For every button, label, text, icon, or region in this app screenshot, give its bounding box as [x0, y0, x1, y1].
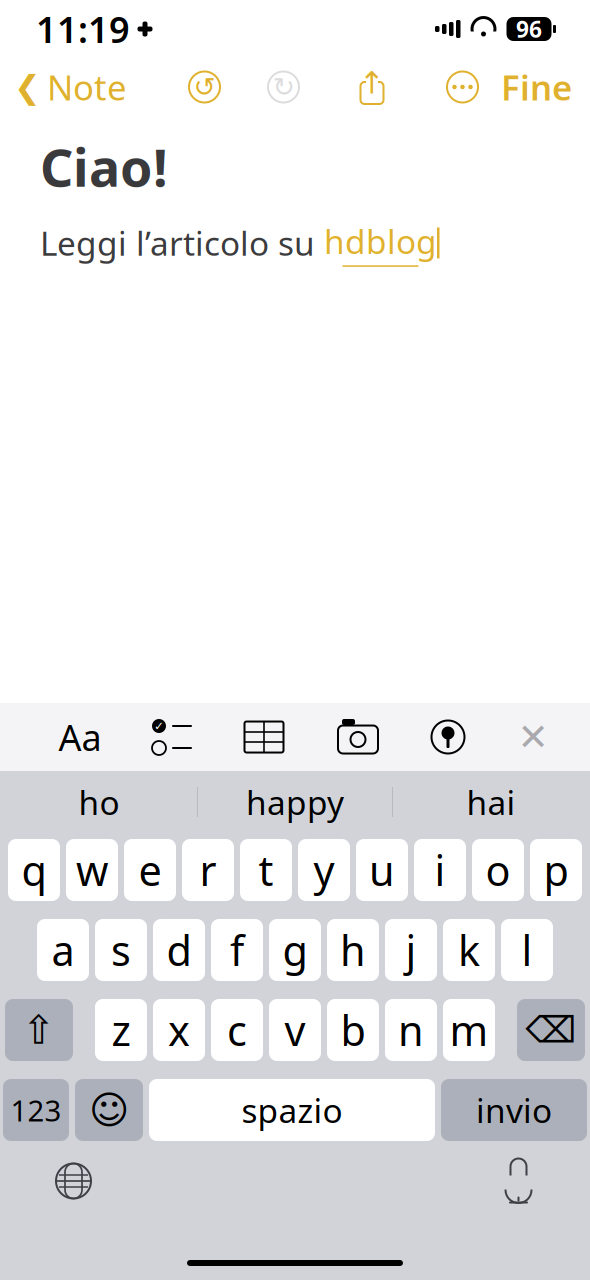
button[interactable]: Hide keyboard	[512, 712, 554, 762]
staticText: u	[369, 843, 395, 897]
staticText: Fine	[501, 64, 572, 110]
staticText: ho	[78, 780, 119, 824]
staticText: q	[21, 843, 46, 897]
staticText: e	[138, 843, 161, 897]
staticText: hai	[466, 780, 515, 824]
button[interactable]: r	[182, 839, 234, 901]
staticText: m	[449, 1003, 488, 1057]
staticText: t	[258, 843, 273, 897]
button[interactable]: s	[95, 919, 147, 981]
staticText: o	[485, 843, 510, 897]
button[interactable]: m	[443, 999, 495, 1061]
staticText: ✕	[517, 716, 548, 758]
button[interactable]: ho	[1, 775, 197, 829]
button[interactable]: t	[240, 839, 292, 901]
staticText: a	[51, 923, 74, 977]
button[interactable]: hai	[393, 775, 589, 829]
staticText: spazio	[241, 1088, 342, 1132]
button[interactable]: invio	[441, 1079, 587, 1141]
staticText: happy	[246, 780, 344, 824]
staticText: 123	[10, 1090, 61, 1129]
staticText: z	[111, 1003, 130, 1057]
button[interactable]: 123	[3, 1079, 69, 1141]
staticText: c	[227, 1003, 247, 1057]
staticText: Ciao!	[40, 132, 168, 201]
button[interactable]: Table	[240, 712, 288, 762]
button[interactable]: z	[95, 999, 147, 1061]
button[interactable]: Share	[352, 69, 392, 105]
button[interactable]: Delete	[517, 999, 585, 1061]
staticText: Aa	[58, 713, 101, 761]
button[interactable]: b	[327, 999, 379, 1061]
button[interactable]: Shift	[5, 999, 73, 1061]
staticText: ⇧	[22, 1007, 56, 1053]
staticText: ☺	[89, 1088, 129, 1132]
button[interactable]: p	[530, 839, 582, 901]
staticText: l	[521, 923, 532, 977]
staticText: invio	[476, 1088, 552, 1132]
button[interactable]: x	[153, 999, 205, 1061]
button[interactable]: e	[124, 839, 176, 901]
staticText: i	[434, 843, 445, 897]
staticText: g	[282, 923, 307, 977]
button[interactable]: f	[211, 919, 263, 981]
button[interactable]: l	[501, 919, 553, 981]
staticText: h	[340, 923, 366, 977]
staticText: s	[111, 923, 131, 977]
staticText: n	[398, 1003, 424, 1057]
button[interactable]: Camera	[334, 712, 382, 762]
button[interactable]: Undo	[182, 69, 227, 104]
staticText: ↑	[359, 66, 385, 100]
button[interactable]: j	[385, 919, 437, 981]
button[interactable]: o	[472, 839, 524, 901]
staticText: v	[284, 1003, 305, 1057]
staticText: ✓	[154, 719, 164, 733]
button[interactable]: u	[356, 839, 408, 901]
staticText: d	[166, 923, 191, 977]
staticText: 96	[516, 14, 542, 44]
staticText: ❮	[14, 69, 41, 105]
button[interactable]: a	[37, 919, 89, 981]
staticText: Leggi l’articolo su	[40, 221, 324, 265]
button[interactable]: Emoji	[75, 1079, 143, 1141]
staticText: k	[458, 923, 480, 977]
button[interactable]: happy	[198, 775, 392, 829]
staticText: p	[543, 843, 568, 897]
button[interactable]: ❮	[0, 56, 127, 118]
staticText: ⌫	[525, 1010, 576, 1050]
button[interactable]: Redo	[261, 69, 306, 104]
button[interactable]: w	[66, 839, 118, 901]
staticText: w	[76, 843, 108, 897]
button[interactable]: Text formatting	[56, 712, 104, 762]
button[interactable]: k	[443, 919, 495, 981]
button[interactable]: spazio	[149, 1079, 435, 1141]
button[interactable]: q	[8, 839, 60, 901]
button[interactable]: g	[269, 919, 321, 981]
button[interactable]: c	[211, 999, 263, 1061]
staticText: r	[199, 843, 216, 897]
button[interactable]: n	[385, 999, 437, 1061]
staticText: f	[230, 923, 244, 977]
staticText: x	[168, 1003, 190, 1057]
staticText: 11:19	[36, 5, 130, 53]
button[interactable]: v	[269, 999, 321, 1061]
staticText: Note	[47, 64, 127, 110]
button[interactable]: Fine	[501, 56, 590, 118]
button[interactable]: Checklist	[148, 712, 196, 762]
staticText: ↻	[272, 72, 294, 102]
button[interactable]: Switch keyboard	[45, 1152, 102, 1209]
button[interactable]: h	[327, 919, 379, 981]
staticText: y	[313, 843, 334, 897]
staticText: j	[405, 923, 416, 977]
staticText: hdblog	[324, 219, 437, 263]
button[interactable]: y	[298, 839, 350, 901]
staticText: b	[340, 1003, 365, 1057]
button[interactable]: Dictation	[492, 1151, 545, 1211]
staticText: ↺	[193, 72, 215, 102]
button[interactable]: Markup	[424, 712, 472, 762]
button[interactable]: More options	[440, 69, 485, 104]
button[interactable]: i	[414, 839, 466, 901]
button[interactable]: d	[153, 919, 205, 981]
